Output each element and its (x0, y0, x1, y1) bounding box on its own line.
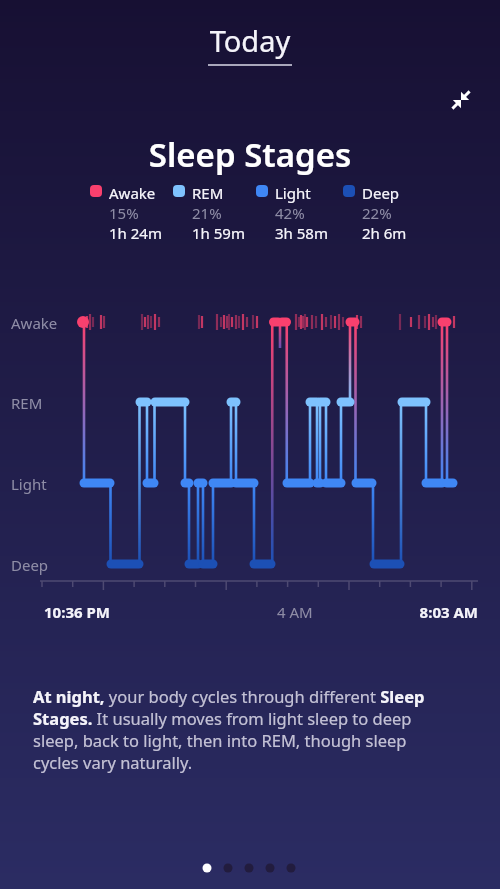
staticText: 21% (192, 203, 222, 223)
button[interactable] (281, 858, 302, 879)
button[interactable] (197, 858, 218, 879)
staticText: 1h 24m (109, 223, 162, 243)
staticText: Stages. It usually moves from light slee… (33, 707, 412, 729)
staticText: Awake (11, 313, 58, 333)
staticText: Awake (109, 183, 156, 203)
button[interactable] (239, 858, 260, 879)
staticText: Sleep Stages (0, 132, 500, 177)
staticText: 1h 59m (192, 223, 245, 243)
staticText: Deep (362, 183, 400, 203)
staticText: cycles vary naturally. (33, 751, 193, 773)
button[interactable]: Today (0, 21, 500, 60)
staticText: 22% (362, 203, 392, 223)
button[interactable] (218, 858, 239, 879)
button[interactable] (260, 858, 281, 879)
staticText: At night, your body cycles through diffe… (33, 685, 425, 707)
staticText: sleep, back to light, then into REM, tho… (33, 729, 407, 751)
staticText: REM (11, 393, 43, 413)
staticText: Light (11, 474, 47, 494)
staticText: 3h 58m (275, 223, 328, 243)
staticText: Light (275, 183, 311, 203)
staticText: 42% (275, 203, 305, 223)
staticText: 15% (109, 203, 139, 223)
staticText: 2h 6m (362, 223, 407, 243)
button[interactable] (441, 80, 481, 120)
staticText: 8:03 AM (0, 602, 478, 622)
staticText: REM (192, 183, 224, 203)
staticText: Deep (11, 555, 49, 575)
staticText: 10:36 PM (44, 602, 110, 622)
staticText: 4 AM (277, 602, 313, 622)
